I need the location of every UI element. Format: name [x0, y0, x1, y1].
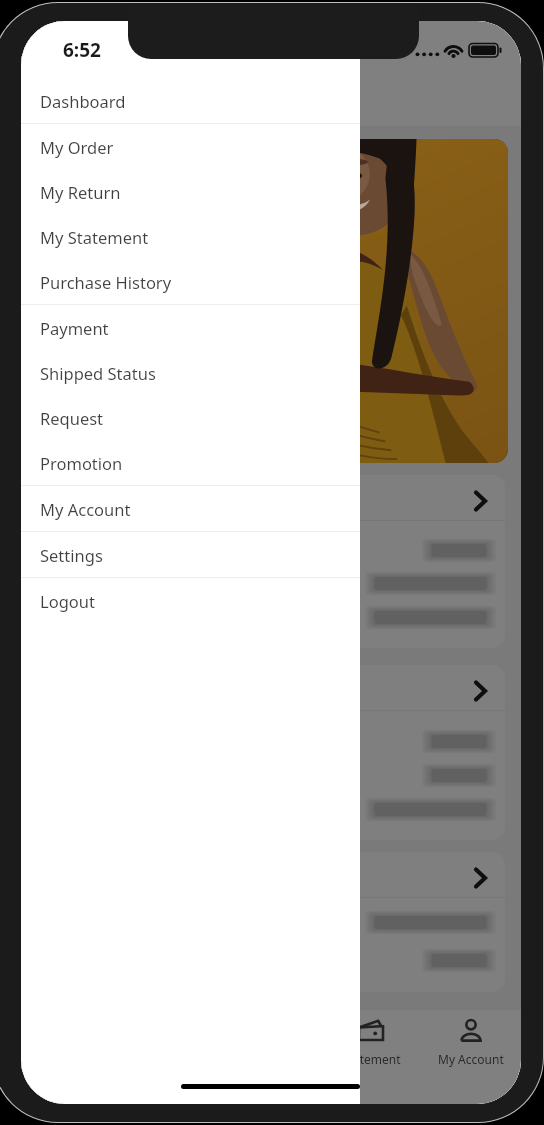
staticText: Logout [40, 590, 95, 612]
button[interactable]: My Order [121, 1010, 221, 1104]
staticText: My Statement [40, 226, 149, 248]
button[interactable]: My Account [421, 1010, 521, 1104]
button[interactable]: Logout [21, 578, 360, 623]
button[interactable]: Promotion [21, 440, 360, 485]
staticText: Request [40, 407, 104, 429]
button[interactable]: My Statement [21, 214, 360, 259]
button[interactable]: My Order [21, 124, 360, 169]
staticText: 6:52 [63, 37, 101, 63]
staticText: Dashboard [40, 90, 126, 112]
button[interactable]: Request [221, 1010, 321, 1104]
button[interactable]: Payment [21, 305, 360, 350]
button[interactable]: Statement [321, 1010, 421, 1104]
staticText: My Order [40, 136, 114, 158]
button[interactable] [36, 665, 505, 840]
button[interactable] [36, 852, 505, 992]
button[interactable]: Dashboard [21, 78, 360, 123]
button[interactable]: Home [21, 1010, 121, 1104]
staticText: My Account [438, 1051, 504, 1067]
staticText: Shipped Status [40, 362, 156, 384]
staticText: My Return [40, 181, 121, 203]
staticText: Promotion [40, 452, 123, 474]
button[interactable]: Request [21, 395, 360, 440]
button[interactable]: My Account [21, 486, 360, 531]
staticText: My Account [40, 498, 131, 520]
button[interactable]: Purchase History [21, 259, 360, 304]
button[interactable]: Settings [21, 532, 360, 577]
staticText: Payment [40, 317, 109, 339]
button[interactable]: Shipped Status [21, 350, 360, 395]
staticText: Statement [342, 1051, 401, 1067]
staticText: Purchase History [40, 271, 172, 293]
button[interactable]: My Return [21, 169, 360, 214]
staticText: Settings [40, 544, 103, 566]
button[interactable] [36, 475, 505, 648]
